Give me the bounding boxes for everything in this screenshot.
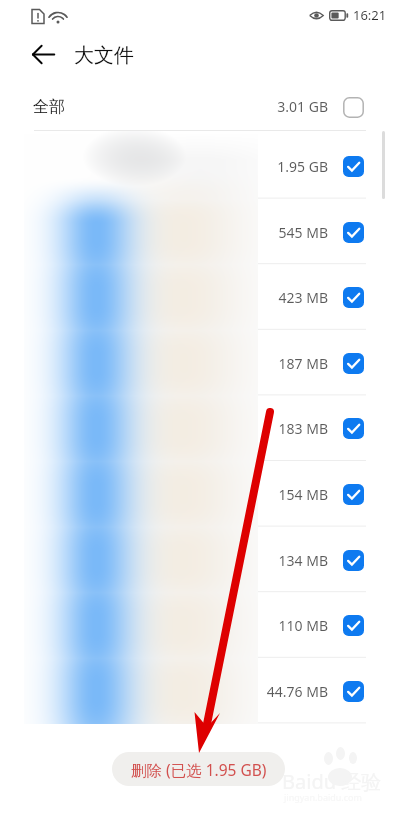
staticText: 134 MB	[248, 551, 328, 570]
button[interactable]: 134 MB	[0, 527, 400, 593]
button[interactable]: 423 MB	[0, 264, 400, 330]
button[interactable]: 全部	[0, 82, 400, 130]
staticText: 3.01 GB	[248, 97, 328, 116]
staticText: 1.95 GB	[248, 157, 328, 176]
staticText: 154 MB	[248, 485, 328, 504]
button[interactable]: 545 MB	[0, 199, 400, 265]
button[interactable]: 1.95 GB	[0, 133, 400, 199]
staticText: 44.76 MB	[248, 682, 328, 701]
button[interactable]: 删除 (已选 1.95 GB)	[112, 752, 285, 786]
staticText: 16:21	[353, 6, 387, 24]
button[interactable]: 154 MB	[0, 461, 400, 527]
staticText: 423 MB	[248, 288, 328, 307]
staticText: Baidu 经验	[282, 768, 382, 795]
button[interactable]: Back	[21, 32, 66, 77]
staticText: 110 MB	[248, 616, 328, 635]
staticText: 183 MB	[248, 419, 328, 438]
staticText: 大文件	[74, 43, 134, 68]
button[interactable]: 110 MB	[0, 592, 400, 658]
staticText: 删除 (已选 1.95 GB)	[131, 759, 267, 780]
staticText: 545 MB	[248, 223, 328, 242]
button[interactable]: 183 MB	[0, 395, 400, 461]
button[interactable]: 187 MB	[0, 330, 400, 396]
staticText: 全部	[33, 97, 65, 117]
staticText: 187 MB	[248, 354, 328, 373]
button[interactable]: 44.76 MB	[0, 658, 400, 724]
